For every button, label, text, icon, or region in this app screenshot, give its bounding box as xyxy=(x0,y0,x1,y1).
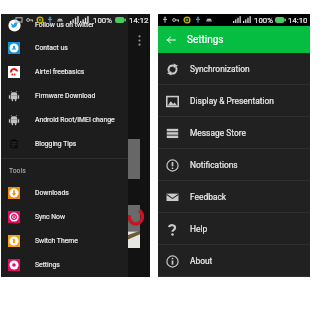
button[interactable]: Contact us xyxy=(1,36,128,60)
staticText: 14:10 xyxy=(288,16,308,25)
staticText: Message Store xyxy=(190,128,246,138)
staticText: Tools xyxy=(9,167,26,175)
staticText: Downloads xyxy=(35,189,69,197)
button[interactable]: Switch Theme xyxy=(1,229,128,253)
staticText: Follow us on twitter xyxy=(35,21,95,29)
button[interactable]: Synchronization xyxy=(158,53,310,84)
staticText: Feedback xyxy=(190,192,227,202)
staticText: Android Root/IMEI change xyxy=(35,116,115,124)
button[interactable]: Airtel freebasics xyxy=(1,60,128,84)
staticText: 100% xyxy=(254,16,273,25)
staticText: Airtel freebasics xyxy=(35,68,85,76)
button[interactable]: Settings xyxy=(1,253,128,277)
button[interactable]: Blogging Tips xyxy=(1,132,128,156)
staticText: Settings xyxy=(35,261,60,269)
staticText: 14:12 xyxy=(129,16,149,25)
staticText: Firmware Download xyxy=(35,92,96,100)
staticText: Help xyxy=(190,224,208,234)
button[interactable]: More options xyxy=(137,34,142,47)
button[interactable]: Back xyxy=(164,33,178,47)
button[interactable]: Display & Presentation xyxy=(158,85,310,116)
button[interactable]: Follow us on twitter xyxy=(1,13,128,37)
staticText: Switch Theme xyxy=(35,237,78,245)
button[interactable]: Feedback xyxy=(158,181,310,212)
staticText: About xyxy=(190,256,213,266)
button[interactable]: Sync Now xyxy=(1,205,128,229)
staticText: Synchronization xyxy=(190,64,250,74)
button[interactable]: Notifications xyxy=(158,149,310,180)
staticText: Notifications xyxy=(190,160,238,170)
staticText: 100% xyxy=(93,16,112,25)
staticText: Settings xyxy=(187,34,224,46)
button[interactable]: Downloads xyxy=(1,181,128,205)
button[interactable]: About xyxy=(158,245,310,276)
staticText: Sync Now xyxy=(35,213,66,221)
button[interactable]: Message Store xyxy=(158,117,310,148)
staticText: Contact us xyxy=(35,44,68,52)
staticText: Display & Presentation xyxy=(190,96,274,106)
staticText: Blogging Tips xyxy=(35,140,77,148)
button[interactable]: Firmware Download xyxy=(1,84,128,108)
button[interactable]: Android Root/IMEI change xyxy=(1,108,128,132)
button[interactable]: Help xyxy=(158,213,310,244)
